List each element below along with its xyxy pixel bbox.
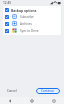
- staticText: Continue: [41, 89, 55, 93]
- staticText: Sync to Drive: [20, 29, 39, 33]
- button[interactable]: Checkbox: [3, 20, 61, 27]
- button[interactable]: Home: [29, 98, 35, 104]
- staticText: Cancel: [7, 89, 17, 93]
- button[interactable]: Checkbox: [3, 27, 61, 34]
- button[interactable]: Checkbox: [5, 8, 9, 12]
- button[interactable]: Checkbox: [5, 22, 9, 26]
- button[interactable]: Checkbox: [3, 6, 61, 13]
- button[interactable]: Continue: [36, 88, 60, 94]
- staticText: Backup options: [11, 8, 37, 12]
- button[interactable]: Checkbox: [3, 13, 61, 20]
- button[interactable]: Recents: [51, 98, 57, 104]
- button[interactable]: Cancel: [4, 88, 20, 94]
- button[interactable]: Checkbox: [5, 29, 9, 33]
- button[interactable]: Back: [7, 98, 13, 104]
- button[interactable]: Checkbox: [5, 15, 9, 19]
- staticText: Subscribe: [20, 15, 34, 19]
- staticText: Archives: [20, 22, 32, 26]
- staticText: 12:45: [3, 1, 12, 5]
